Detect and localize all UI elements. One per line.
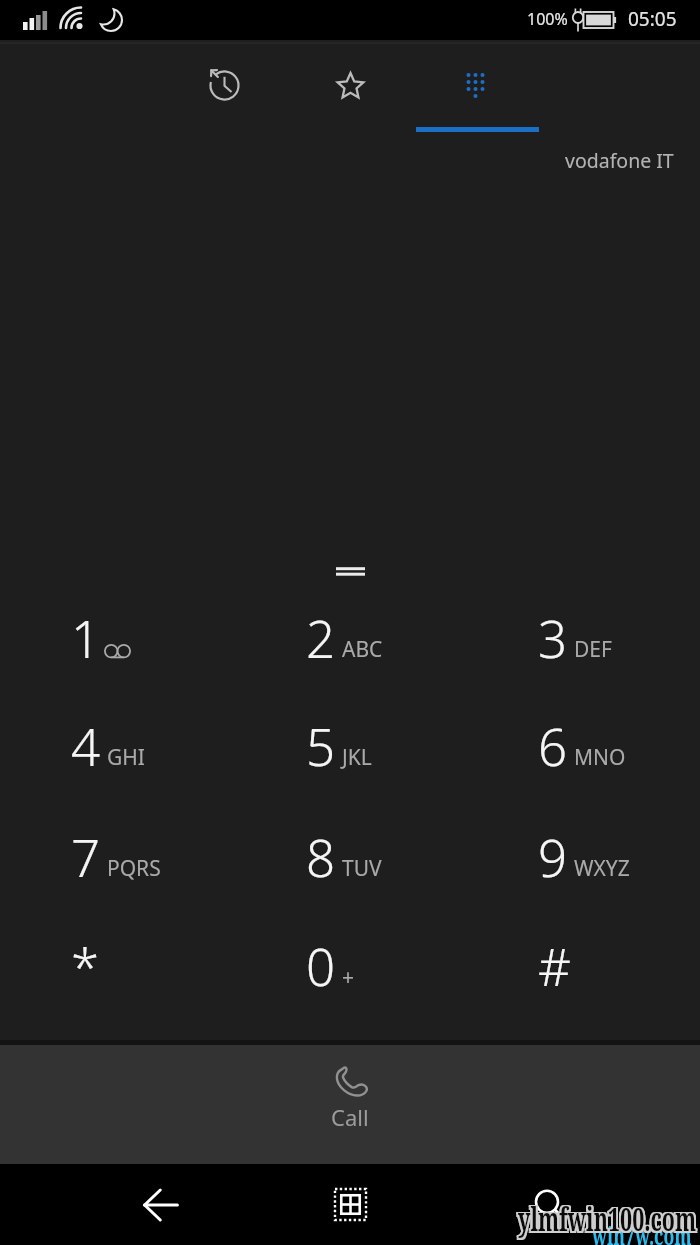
button[interactable]: 9 (498, 786, 698, 890)
button[interactable]: Home (300, 1164, 400, 1245)
staticText: * (71, 931, 100, 1000)
staticText: 6 (538, 711, 568, 780)
staticText: ylmfwin100.com (518, 1198, 696, 1241)
button[interactable]: 8 (266, 786, 466, 890)
staticText: PQRS (107, 854, 161, 883)
staticText: 4 (71, 711, 101, 780)
staticText: 100% (527, 8, 568, 30)
staticText: 5 (306, 711, 336, 780)
button[interactable]: Back (111, 1164, 211, 1245)
button[interactable]: 2 (266, 567, 466, 671)
button[interactable]: 5 (266, 675, 466, 779)
staticText: DEF (574, 635, 612, 664)
button[interactable]: Favorites (287, 40, 413, 135)
button[interactable]: Call history (161, 40, 287, 135)
button[interactable]: * (31, 895, 231, 999)
staticText: win7w.com (592, 1218, 692, 1245)
staticText: 3 (538, 603, 568, 672)
button[interactable]: 7 (31, 786, 231, 890)
staticText: TUV (342, 854, 382, 883)
staticText: ylmfwin100.com (518, 1200, 696, 1243)
button[interactable]: 1 (31, 567, 231, 671)
staticText: ylmfwin100.com (516, 1196, 695, 1239)
staticText: # (538, 931, 571, 1000)
staticText: WXYZ (574, 854, 630, 883)
staticText: 05:05 (628, 6, 677, 32)
button[interactable]: 6 (498, 675, 698, 779)
staticText: ylmfwin100.com (520, 1198, 698, 1241)
button[interactable]: 4 (31, 675, 231, 779)
staticText: 2 (306, 603, 336, 672)
staticText: ylmfwin100.com (520, 1200, 698, 1243)
button[interactable]: Call (0, 1045, 700, 1164)
staticText: + (342, 963, 355, 992)
button[interactable]: # (498, 895, 698, 999)
staticText: 1 (71, 603, 101, 672)
staticText: GHI (107, 743, 145, 772)
staticText: 7 (71, 822, 101, 891)
staticText: Call (331, 1102, 369, 1132)
staticText: ABC (342, 635, 383, 664)
staticText: JKL (342, 743, 372, 772)
staticText: ylmfwin100.com (516, 1198, 695, 1241)
staticText: ylmfwin100.com (518, 1196, 696, 1239)
staticText: 9 (538, 822, 568, 891)
staticText: ylmfwin100.com (516, 1200, 695, 1243)
button[interactable]: Dial pad (413, 40, 537, 135)
button[interactable]: 3 (498, 567, 698, 671)
button[interactable]: 0 (266, 895, 466, 999)
staticText: 0 (306, 931, 336, 1000)
staticText: 8 (306, 822, 336, 891)
staticText: vodafone IT (565, 147, 674, 174)
button[interactable]: Search (497, 1164, 597, 1245)
staticText: ylmfwin100.com (520, 1196, 698, 1239)
staticText: MNO (574, 743, 626, 772)
